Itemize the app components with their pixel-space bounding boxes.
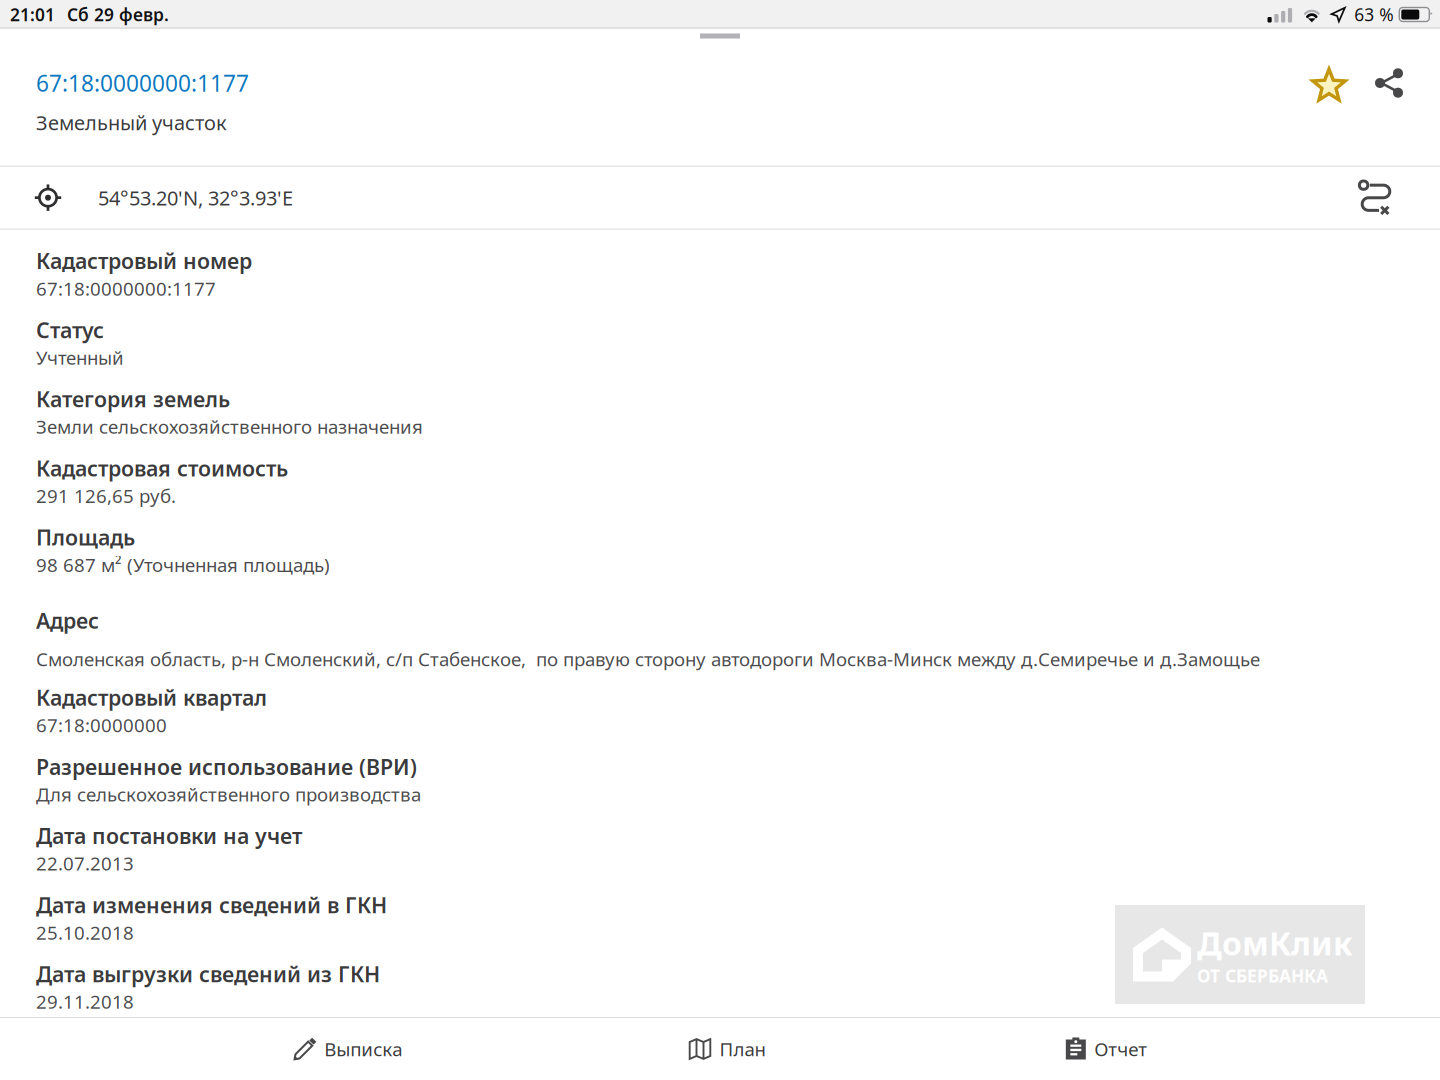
staticText: ОТ СБЕРБАНКА xyxy=(1197,964,1328,987)
button[interactable]: 54°53.20'N, 32°3.93'E xyxy=(0,167,1440,229)
button[interactable]: Отчет xyxy=(917,1018,1296,1080)
button[interactable]: Поделиться xyxy=(1347,68,1404,98)
staticText: Отчет xyxy=(1094,1037,1147,1061)
staticText: 29.11.2018 xyxy=(36,989,134,1014)
button[interactable]: План xyxy=(537,1018,917,1080)
staticText: Для сельскохозяйственного производства xyxy=(36,782,421,807)
staticText: Кадастровая стоимость xyxy=(36,454,288,482)
staticText: 21:01 xyxy=(10,3,55,26)
staticText: 54°53.20'N, 32°3.93'E xyxy=(98,184,293,211)
staticText: Выписка xyxy=(324,1037,402,1061)
staticText: 22.07.2013 xyxy=(36,851,134,876)
staticText: Земельный участок xyxy=(36,109,227,136)
staticText: 291 126,65 руб. xyxy=(36,483,176,508)
staticText: ДомКлик xyxy=(1197,922,1353,964)
staticText: Статус xyxy=(36,316,104,344)
staticText: Учтенный xyxy=(36,345,124,370)
staticText: Дата выгрузки сведений из ГКН xyxy=(36,960,380,988)
staticText: Разрешенное использование (ВРИ) xyxy=(36,752,417,781)
button[interactable]: Добавить в избранное xyxy=(1311,68,1347,104)
staticText: Дата постановки на учет xyxy=(36,822,302,850)
staticText: Дата изменения сведений в ГКН xyxy=(36,891,387,919)
staticText: Кадастровый номер xyxy=(36,247,252,275)
staticText: Категория земель xyxy=(36,385,230,413)
staticText: 63 % xyxy=(1354,3,1393,26)
staticText: План xyxy=(719,1037,765,1061)
staticText: Адрес xyxy=(36,606,99,635)
staticText: Смоленская область, р-н Смоленский, с/п … xyxy=(36,647,1260,671)
button[interactable]: Выписка xyxy=(158,1018,537,1080)
staticText: 98 687 м² (Уточненная площадь) xyxy=(36,552,330,577)
staticText: Сб 29 февр. xyxy=(67,3,169,26)
staticText: Земли сельскохозяйственного назначения xyxy=(36,414,423,439)
staticText: 67:18:0000000:1177 xyxy=(36,68,249,98)
staticText: 25.10.2018 xyxy=(36,920,134,945)
staticText: Кадастровый квартал xyxy=(36,683,267,712)
staticText: 67:18:0000000 xyxy=(36,713,167,737)
staticText: 67:18:0000000:1177 xyxy=(36,276,216,301)
staticText: Площадь xyxy=(36,523,135,551)
